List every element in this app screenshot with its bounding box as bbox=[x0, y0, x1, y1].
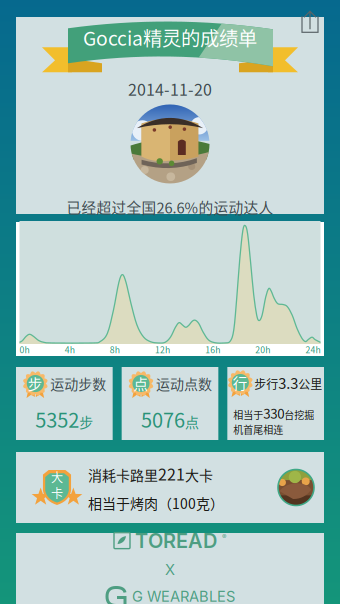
staticText: 4h bbox=[65, 343, 75, 356]
staticText: 运动点数 bbox=[156, 373, 212, 394]
button[interactable]: Share bbox=[299, 9, 321, 33]
staticText: 12h bbox=[155, 343, 170, 356]
staticText: 5352 bbox=[35, 404, 79, 433]
staticText: G WEARABLES bbox=[132, 588, 235, 604]
staticText: 已经超过全国26.6%的运动达人 bbox=[66, 196, 273, 218]
staticText: 点 bbox=[185, 411, 199, 432]
staticText: Goccia精灵的成绩单 bbox=[83, 23, 257, 51]
staticText: 5076 bbox=[141, 404, 185, 433]
staticText: 20h bbox=[255, 343, 270, 356]
staticText: 大 bbox=[51, 468, 63, 486]
staticText: 消耗卡路里221大卡 bbox=[88, 462, 213, 485]
staticText: ® bbox=[222, 533, 226, 541]
staticText: 8h bbox=[110, 343, 120, 356]
staticText: 2014-11-20 bbox=[128, 77, 212, 100]
staticText: 0h bbox=[19, 343, 29, 356]
staticText: 16h bbox=[205, 343, 220, 356]
staticText: 卡 bbox=[51, 484, 63, 501]
staticText: X bbox=[165, 561, 175, 578]
staticText: TOREAD bbox=[135, 528, 217, 553]
staticText: 点 bbox=[133, 373, 148, 394]
staticText: 相当于烤肉（100克） bbox=[88, 493, 224, 513]
staticText: 运动步数 bbox=[50, 373, 106, 394]
staticText: 步 bbox=[79, 411, 93, 432]
staticText: 步行3.3公里 bbox=[254, 372, 322, 393]
staticText: 相当于330台挖掘机首尾相连 bbox=[233, 403, 314, 436]
staticText: 行 bbox=[233, 372, 248, 393]
staticText: 24h bbox=[305, 343, 320, 356]
staticText: 步 bbox=[28, 373, 43, 394]
